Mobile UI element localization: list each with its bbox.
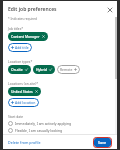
staticText: Add title: [15, 45, 29, 50]
button[interactable]: Add location: [8, 98, 39, 107]
staticText: Flexible, I am casually looking: [15, 128, 63, 133]
button[interactable]: Add title: [8, 43, 32, 52]
staticText: Start date: [8, 114, 24, 118]
staticText: Immediately, I am actively applying: [15, 121, 72, 126]
staticText: Locations (on-site)*: [8, 81, 39, 85]
button[interactable]: Close: [105, 5, 114, 14]
button[interactable]: Content Manager: [8, 32, 48, 41]
button[interactable]: Hybrid: [33, 65, 55, 74]
staticText: Add location: [15, 100, 36, 105]
staticText: Location types*: [8, 59, 33, 63]
button[interactable]: On-site: [8, 65, 31, 74]
staticText: * Indicates required: [8, 17, 37, 21]
staticText: United States: [11, 89, 33, 94]
button[interactable]: Delete from profile: [8, 139, 41, 146]
button[interactable]: Save: [94, 138, 111, 147]
staticText: Content Manager: [11, 34, 40, 39]
button[interactable]: Flexible, I am casually looking: [8, 127, 111, 134]
button[interactable]: Immediately, I am actively applying: [8, 120, 111, 127]
staticText: On-site: [11, 67, 23, 72]
staticText: Hybrid: [36, 67, 47, 72]
button[interactable]: United States: [8, 87, 41, 96]
staticText: Remote: [60, 67, 73, 72]
button[interactable]: Remote: [57, 65, 80, 74]
staticText: Job titles*: [8, 26, 24, 30]
staticText: Save: [98, 140, 107, 145]
staticText: Edit job preferences: [8, 6, 105, 13]
staticText: Delete from profile: [8, 140, 41, 145]
